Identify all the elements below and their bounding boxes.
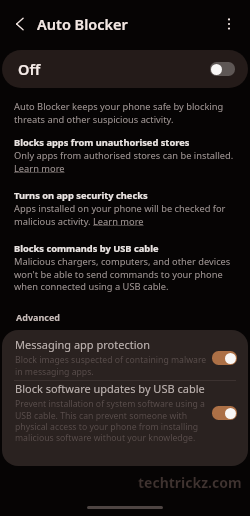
staticText: Auto Blocker	[37, 14, 128, 34]
staticText: Malicious chargers, computers, and other…	[14, 255, 236, 292]
staticText: Advanced	[16, 311, 61, 323]
staticText: Block images suspected of containing mal…	[15, 354, 210, 378]
staticText: Blocks apps from unauthorised stores	[14, 136, 190, 149]
button[interactable]: Off	[2, 50, 248, 88]
button[interactable]: Messaging app protection	[2, 337, 248, 378]
staticText: Turns on app security checks	[14, 189, 148, 202]
button[interactable]: Block software updates by USB cable	[2, 381, 248, 444]
staticText: Auto Blocker keeps your phone safe by bl…	[14, 100, 236, 125]
button[interactable]: Switch on	[212, 351, 237, 365]
staticText: Prevent installation of system software …	[15, 398, 210, 444]
staticText: Block software updates by USB cable	[15, 381, 205, 396]
button[interactable]: More options	[219, 14, 239, 34]
staticText: Blocks commands by USB cable	[14, 242, 159, 255]
staticText: Messaging app protection	[15, 337, 150, 352]
button[interactable]: Switch on	[212, 406, 237, 420]
button[interactable]: Switch off	[210, 62, 235, 76]
staticText: Only apps from authorised stores can be …	[14, 149, 236, 174]
button[interactable]: Navigate up	[10, 14, 30, 34]
staticText: techtrickz.com	[138, 473, 242, 492]
staticText: Apps installed on your phone will be che…	[14, 202, 236, 227]
staticText: Off	[18, 59, 41, 79]
